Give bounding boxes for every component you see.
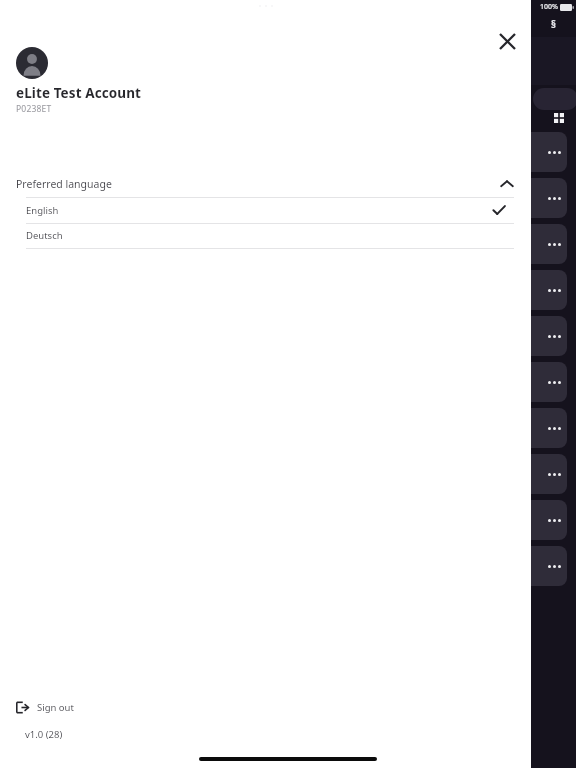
- button[interactable]: Deutsch: [0, 223, 531, 248]
- staticText: P0238ET: [16, 103, 52, 115]
- button[interactable]: Recent app: [523, 454, 567, 494]
- button[interactable]: Recent app: [523, 132, 567, 172]
- button[interactable]: Recent app: [523, 270, 567, 310]
- staticText: 100%: [540, 2, 558, 12]
- button[interactable]: Recent app: [523, 224, 567, 264]
- button[interactable]: Preferred language: [0, 170, 531, 197]
- button[interactable]: Sign out: [16, 696, 74, 718]
- button[interactable]: Recent app: [523, 408, 567, 448]
- button[interactable]: Recent app: [523, 316, 567, 356]
- button[interactable]: Recent app: [523, 362, 567, 402]
- button[interactable]: Close: [491, 25, 523, 57]
- button[interactable]: Apps: [550, 109, 568, 127]
- button[interactable]: Recent app: [523, 546, 567, 586]
- button[interactable]: English: [0, 197, 531, 223]
- button[interactable]: Recent app: [523, 178, 567, 218]
- staticText: Preferred language: [16, 177, 112, 191]
- staticText: eLite Test Account: [16, 84, 142, 102]
- staticText: v1.0 (28): [25, 728, 63, 741]
- button[interactable]: Recent app: [523, 500, 567, 540]
- staticText: §: [551, 17, 556, 31]
- staticText: Deutsch: [26, 229, 63, 242]
- staticText: Sign out: [37, 701, 74, 714]
- staticText: English: [26, 204, 59, 217]
